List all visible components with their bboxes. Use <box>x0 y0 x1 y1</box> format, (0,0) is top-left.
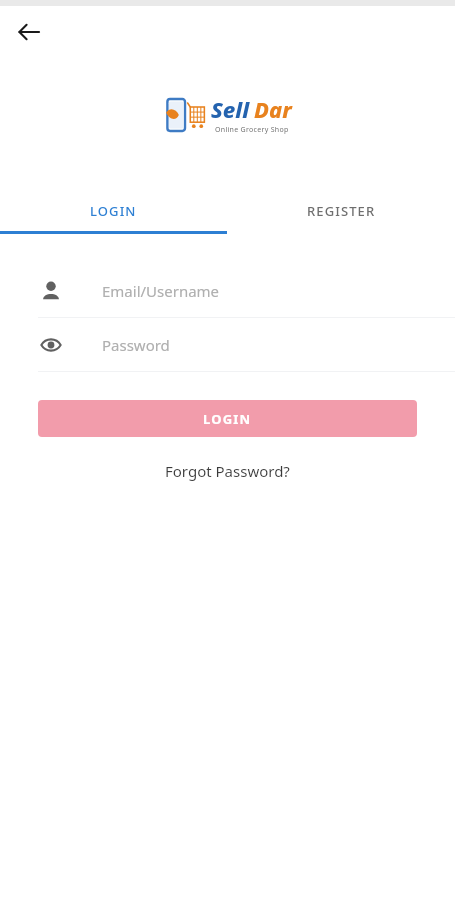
staticText: Dar <box>254 94 292 124</box>
staticText: Email/Username <box>102 281 220 301</box>
staticText: Password <box>102 335 170 355</box>
button[interactable]: REGISTER <box>227 190 455 231</box>
other: Username <box>38 278 64 304</box>
staticText: LOGIN <box>203 410 252 428</box>
other: Show password <box>38 332 64 358</box>
staticText: Forgot Password? <box>165 461 290 481</box>
button[interactable]: Back <box>7 10 51 54</box>
button[interactable]: Show password <box>0 318 455 371</box>
button[interactable]: Username <box>0 264 455 317</box>
button[interactable]: Forgot Password? <box>155 456 300 486</box>
staticText: Online Grocery Shop <box>215 125 289 135</box>
staticText: REGISTER <box>307 202 376 220</box>
button[interactable]: LOGIN <box>0 190 227 231</box>
button[interactable]: LOGIN <box>38 400 417 437</box>
staticText: LOGIN <box>90 202 137 220</box>
staticText: Sell <box>211 94 249 124</box>
